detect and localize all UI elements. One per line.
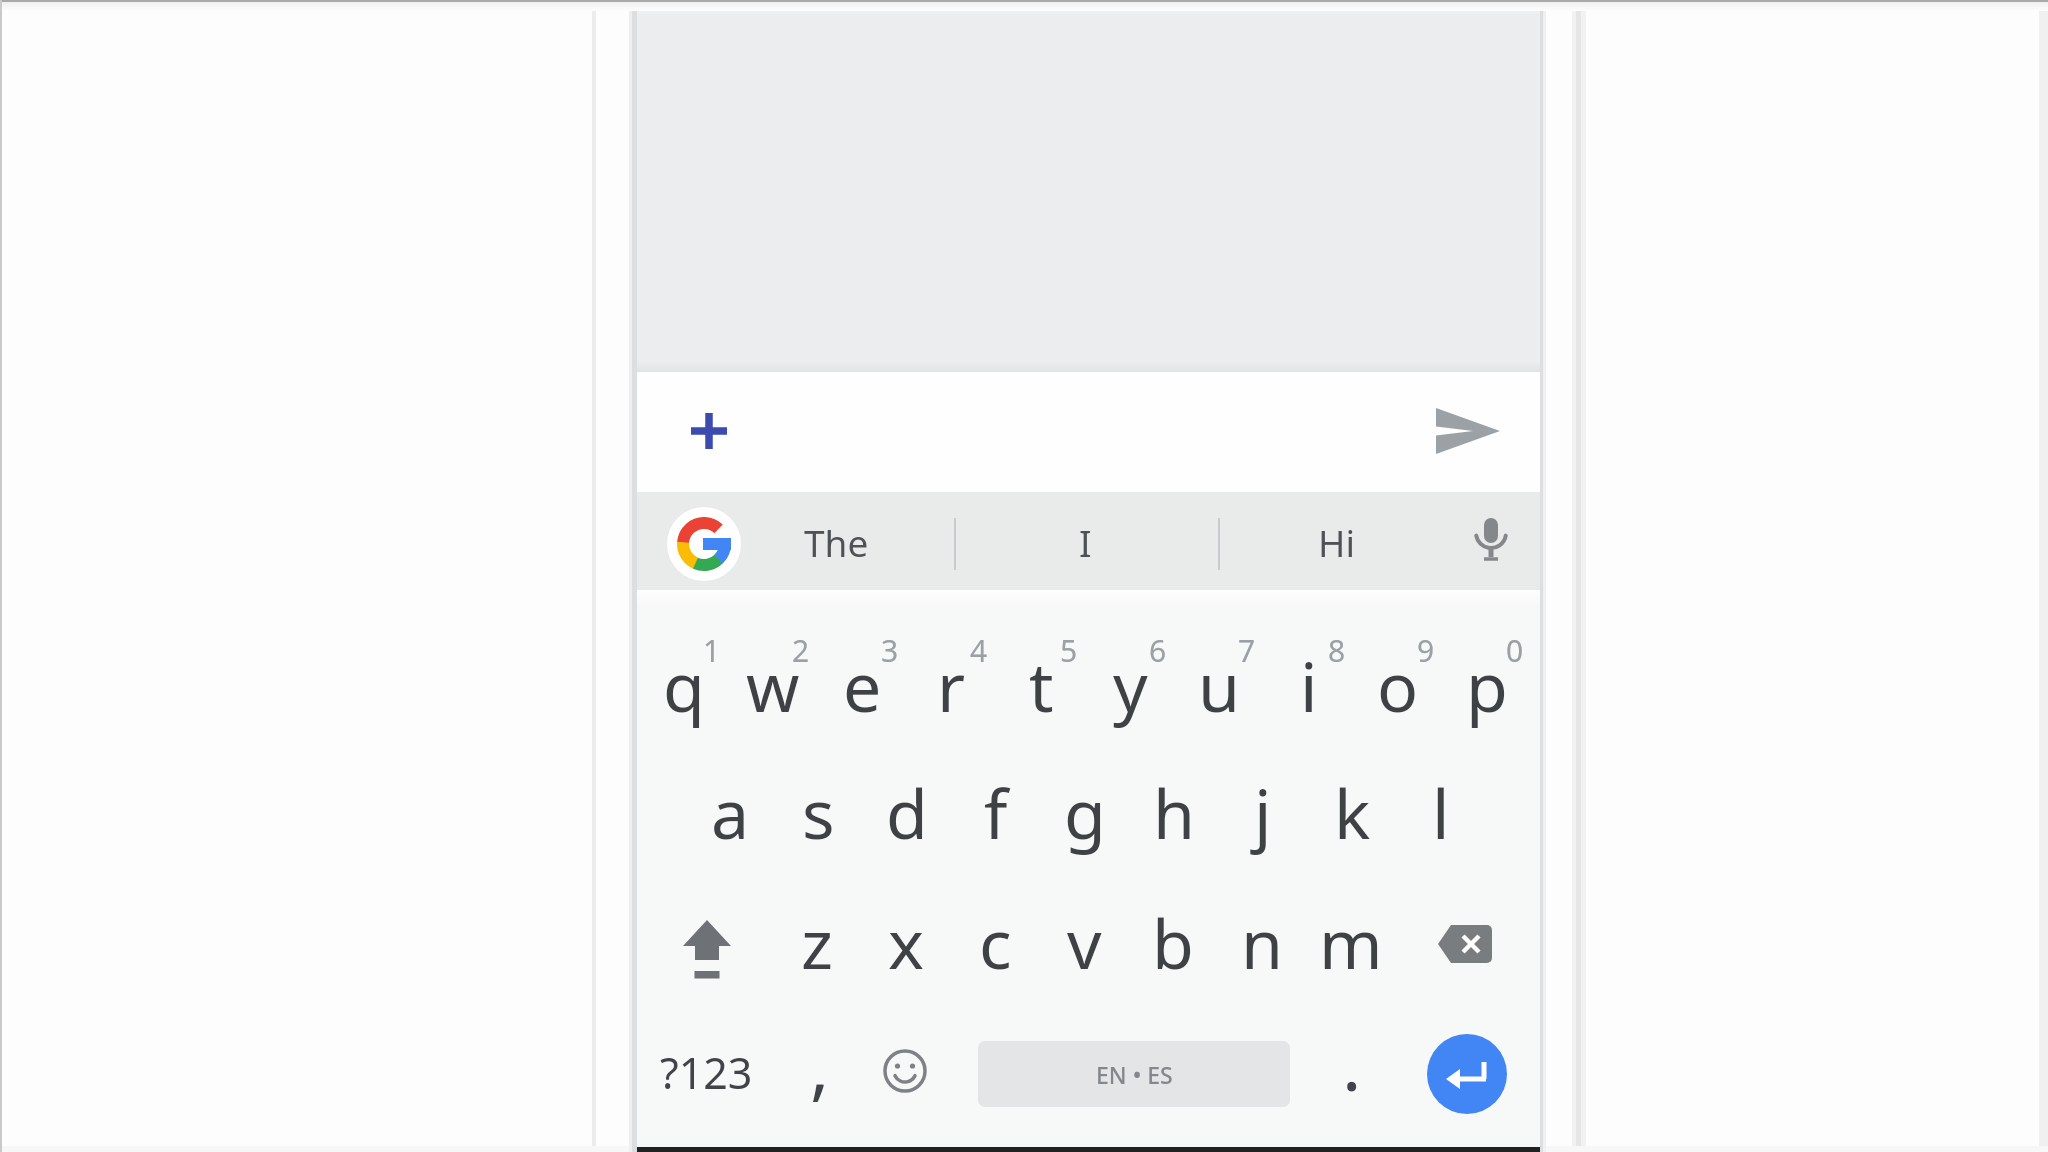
button[interactable]: m <box>1308 882 1394 1002</box>
staticText: 4 <box>970 630 988 671</box>
button[interactable]: l <box>1398 752 1484 872</box>
button[interactable]: b <box>1130 882 1216 1002</box>
button[interactable]: ?123 <box>641 1017 771 1127</box>
button[interactable]: k <box>1309 752 1395 872</box>
button[interactable]: c <box>952 882 1038 1002</box>
staticText: 3 <box>881 630 899 671</box>
button[interactable] <box>689 411 729 451</box>
button[interactable]: d <box>864 752 950 872</box>
staticText: ?123 <box>660 1043 753 1102</box>
button[interactable]: . <box>1317 1008 1387 1118</box>
staticText: p <box>1466 639 1508 732</box>
staticText: , <box>810 1016 830 1114</box>
staticText: I <box>1079 517 1092 567</box>
button[interactable] <box>1469 515 1513 571</box>
staticText: Hi <box>1318 517 1355 567</box>
button[interactable] <box>667 507 741 581</box>
button[interactable]: j <box>1220 752 1306 872</box>
button[interactable]: g <box>1042 752 1128 872</box>
button[interactable]: EN • ES <box>978 1041 1290 1107</box>
button[interactable]: o <box>1355 625 1441 745</box>
staticText: r <box>937 639 966 732</box>
button[interactable]: p <box>1444 625 1530 745</box>
staticText: The <box>804 517 869 567</box>
button[interactable] <box>1427 1034 1507 1114</box>
staticText: t <box>1029 639 1054 732</box>
staticText: k <box>1334 766 1371 859</box>
staticText: b <box>1152 896 1194 989</box>
button[interactable] <box>1436 408 1500 454</box>
staticText: 5 <box>1060 630 1078 671</box>
staticText: n <box>1241 896 1284 989</box>
staticText: 6 <box>1149 630 1167 671</box>
staticText: a <box>711 766 750 859</box>
staticText: m <box>1319 896 1383 989</box>
button[interactable]: q <box>641 625 727 745</box>
button[interactable]: a <box>687 752 773 872</box>
button[interactable]: y <box>1087 625 1173 745</box>
staticText: 2 <box>792 630 810 671</box>
staticText: z <box>801 896 833 989</box>
staticText: d <box>886 766 928 859</box>
staticText: x <box>888 896 924 989</box>
button[interactable]: x <box>863 882 949 1002</box>
staticText: h <box>1153 766 1196 859</box>
button[interactable]: The <box>766 482 906 602</box>
button[interactable]: I <box>1015 482 1155 602</box>
staticText: c <box>979 896 1012 989</box>
button[interactable]: e <box>819 625 905 745</box>
button[interactable] <box>637 372 1540 492</box>
staticText: l <box>1432 766 1450 859</box>
button[interactable]: r <box>908 625 994 745</box>
staticText: 7 <box>1238 630 1256 671</box>
staticText: q <box>663 639 705 732</box>
button[interactable]: h <box>1131 752 1217 872</box>
staticText: . <box>1342 1014 1362 1112</box>
staticText: j <box>1254 766 1272 859</box>
staticText: u <box>1198 639 1241 732</box>
staticText: 0 <box>1506 630 1524 671</box>
button[interactable]: , <box>785 1010 855 1120</box>
staticText: y <box>1113 639 1148 732</box>
staticText: EN • ES <box>1096 1059 1173 1090</box>
button[interactable]: z <box>774 882 860 1002</box>
staticText: 9 <box>1417 630 1435 671</box>
button[interactable]: Hi <box>1266 482 1406 602</box>
staticText: f <box>984 766 1008 859</box>
button[interactable] <box>1438 923 1494 965</box>
button[interactable] <box>675 915 739 985</box>
staticText: g <box>1064 766 1106 859</box>
button[interactable]: n <box>1219 882 1305 1002</box>
button[interactable]: f <box>953 752 1039 872</box>
staticText: w <box>746 639 800 732</box>
button[interactable]: i <box>1266 625 1352 745</box>
button[interactable]: t <box>998 625 1084 745</box>
staticText: i <box>1300 639 1318 732</box>
button[interactable]: u <box>1176 625 1262 745</box>
button[interactable]: w <box>730 625 816 745</box>
staticText: s <box>802 766 835 859</box>
staticText: 8 <box>1328 630 1346 671</box>
staticText: e <box>843 639 882 732</box>
button[interactable]: s <box>775 752 861 872</box>
button[interactable]: v <box>1041 882 1127 1002</box>
staticText: 1 <box>703 630 721 671</box>
staticText: o <box>1377 639 1419 732</box>
button[interactable] <box>878 1044 932 1098</box>
staticText: v <box>1067 896 1102 989</box>
